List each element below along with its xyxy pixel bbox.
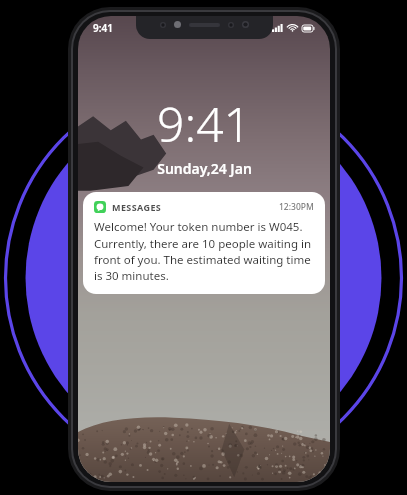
staticText: 12:30PM xyxy=(279,201,314,213)
staticText: 9:41 xyxy=(157,91,251,156)
button[interactable]: Messages app icon xyxy=(83,192,325,294)
staticText: MESSAGES xyxy=(112,201,162,213)
staticText: Sunday,24 Jan xyxy=(157,159,252,178)
staticText: 9:41 xyxy=(93,21,113,35)
staticText: Welcome! Your token number is W045. Curr… xyxy=(94,219,314,283)
other: Messages app icon xyxy=(94,201,106,213)
